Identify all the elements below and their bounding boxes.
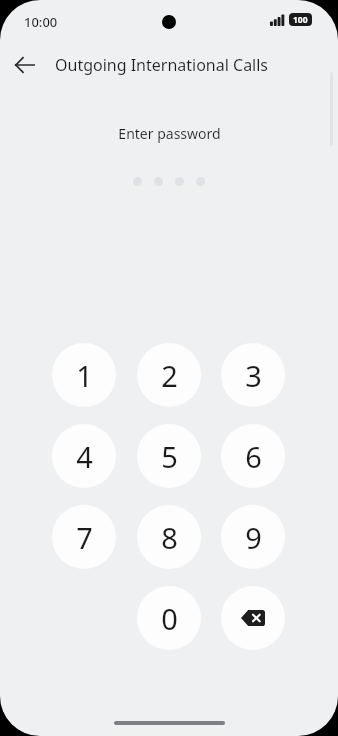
button[interactable]: Backspace: [221, 586, 285, 650]
staticText: 9: [245, 518, 262, 557]
button[interactable]: 9: [221, 505, 285, 569]
button[interactable]: 7: [52, 505, 116, 569]
staticText: 8: [161, 518, 178, 557]
staticText: 3: [245, 356, 262, 395]
staticText: Enter password: [118, 124, 221, 143]
button[interactable]: 5: [137, 424, 201, 488]
staticText: 0: [161, 599, 178, 638]
staticText: Outgoing International Calls: [55, 54, 269, 76]
button[interactable]: Back: [8, 48, 42, 82]
staticText: 5: [161, 437, 178, 476]
button[interactable]: 6: [221, 424, 285, 488]
button[interactable]: 4: [52, 424, 116, 488]
button[interactable]: 2: [137, 343, 201, 407]
staticText: 2: [161, 356, 178, 395]
staticText: 1: [76, 356, 93, 395]
staticText: 6: [245, 437, 262, 476]
button[interactable]: 1: [52, 343, 116, 407]
staticText: 7: [76, 518, 93, 557]
staticText: 10:00: [24, 13, 58, 31]
staticText: 100: [293, 14, 308, 26]
staticText: 4: [76, 437, 93, 476]
button[interactable]: 0: [137, 586, 201, 650]
button[interactable]: 8: [137, 505, 201, 569]
button[interactable]: 3: [221, 343, 285, 407]
